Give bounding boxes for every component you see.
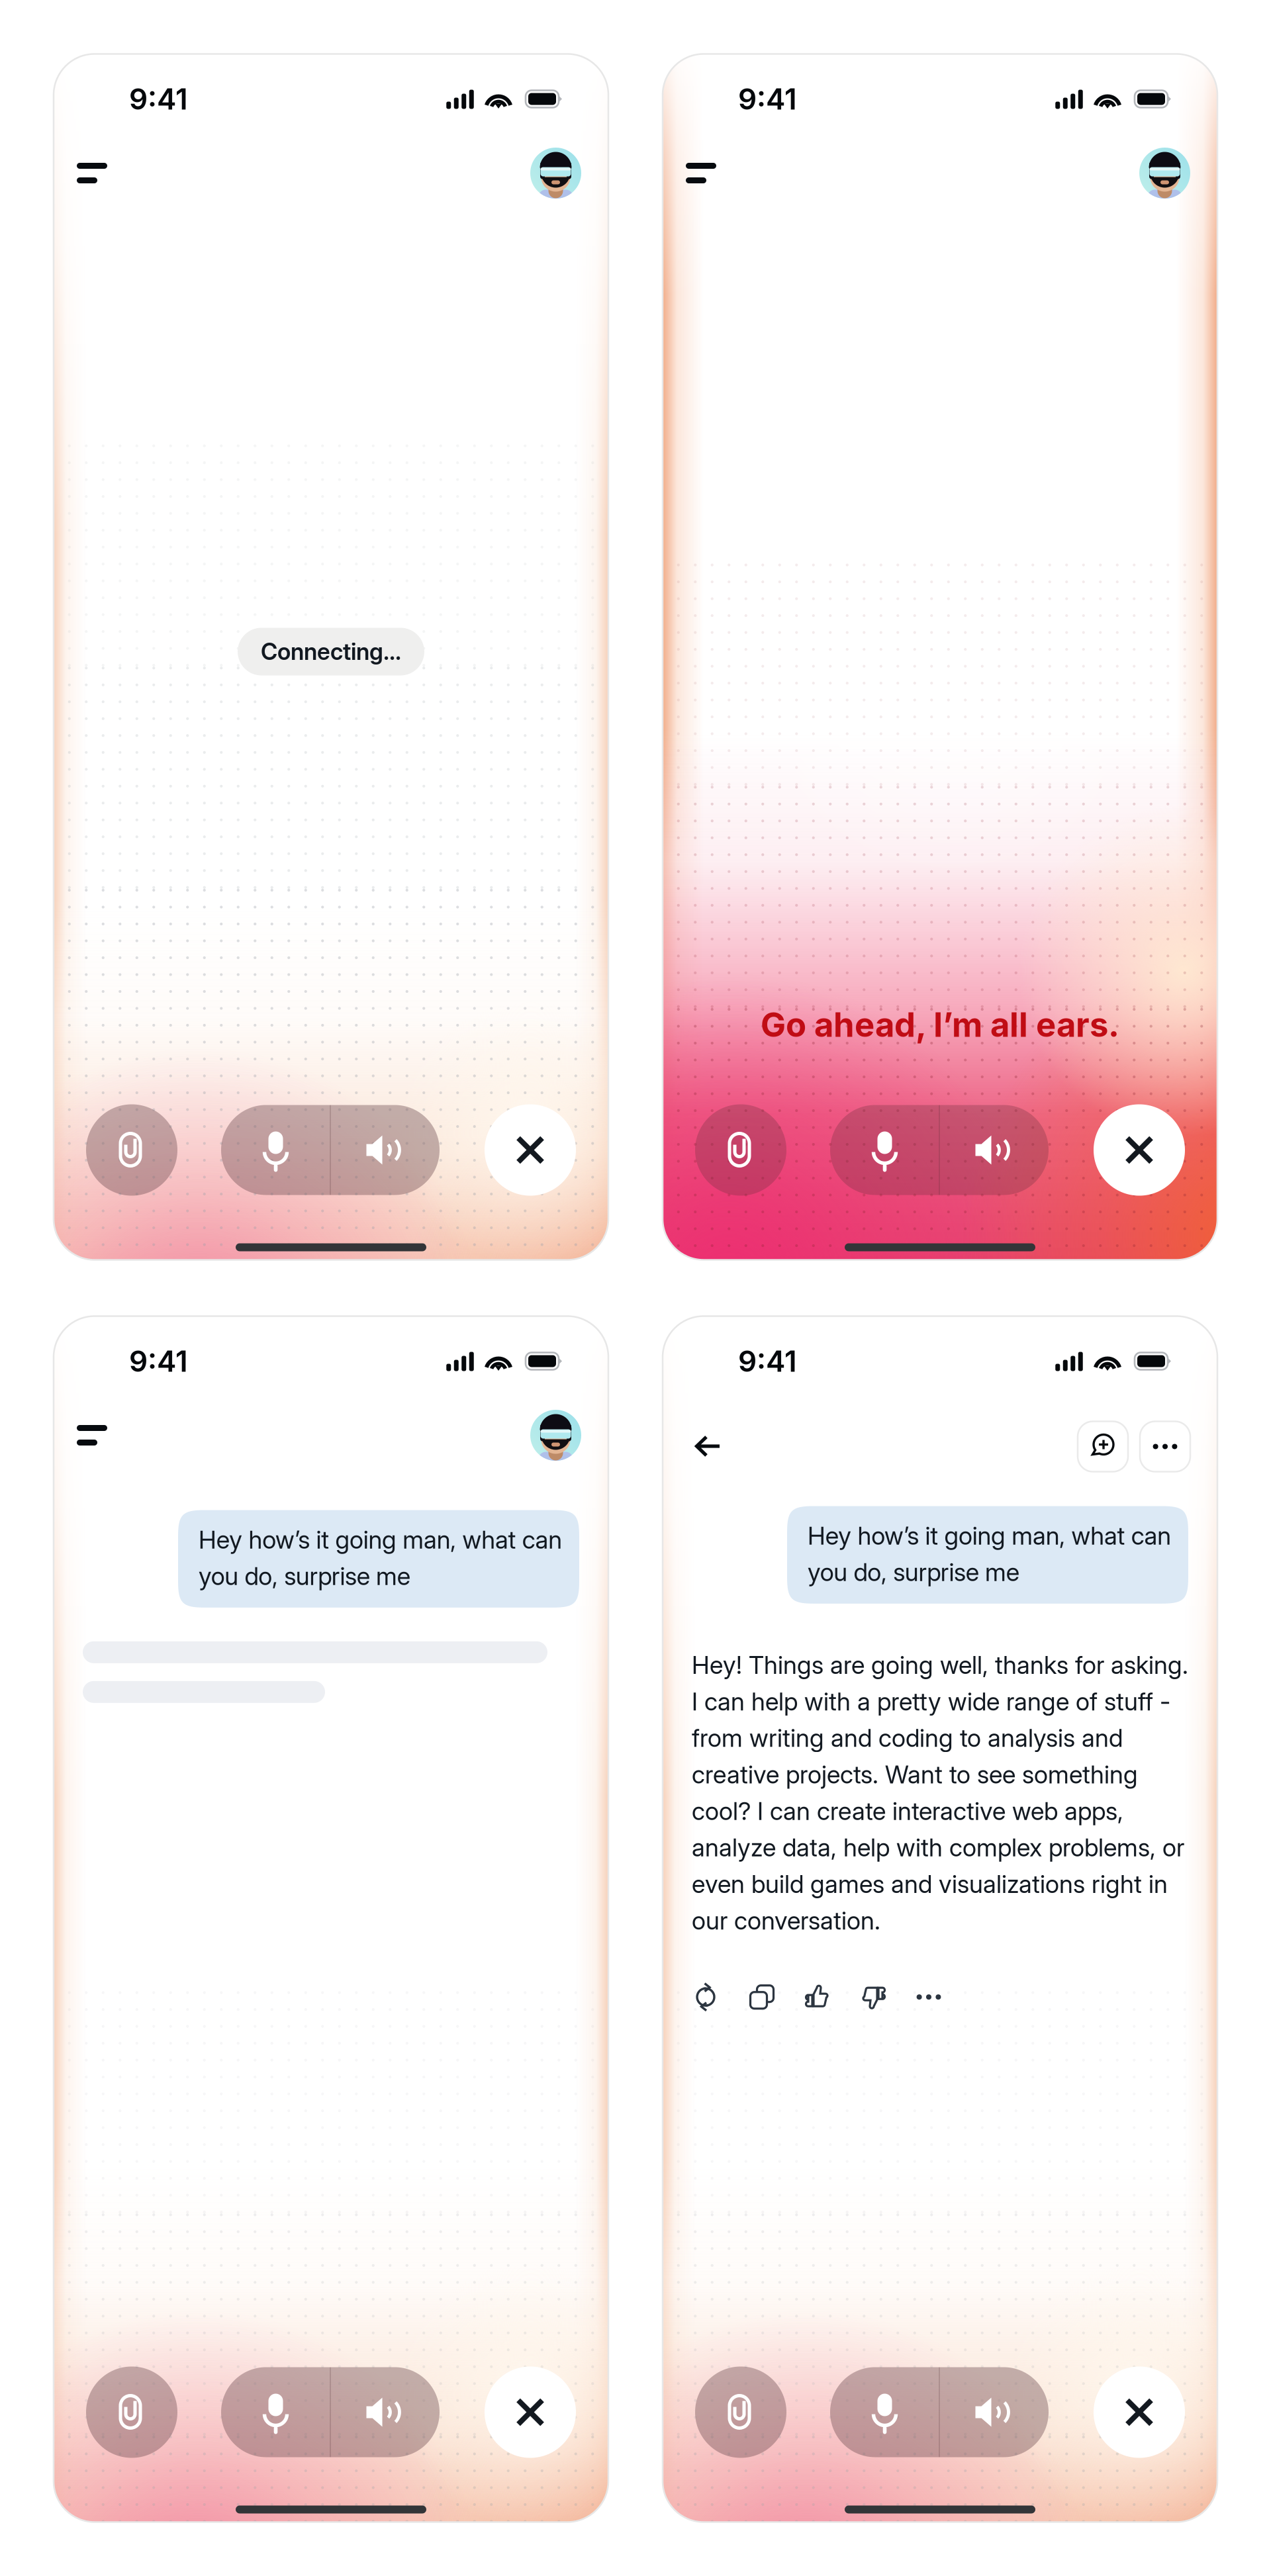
button[interactable]: Profile [1139,148,1190,199]
button[interactable]: End conversation [1094,1104,1185,1196]
button[interactable]: Retry [692,1983,720,2011]
button[interactable]: Attach file [86,2367,177,2458]
button[interactable]: Back [690,1421,740,1472]
staticText: 9:41 [129,1344,188,1379]
button[interactable]: End conversation [485,1104,576,1196]
button[interactable]: Bad response [859,1983,887,2011]
staticText: Hey how’s it going man, what can you do,… [808,1521,1171,1587]
button[interactable]: Microphone [221,1105,330,1195]
button[interactable]: Copy [748,1983,776,2011]
button[interactable]: End conversation [485,2367,576,2458]
button[interactable]: Menu [81,1410,131,1460]
button[interactable]: Menu [81,148,131,198]
button[interactable]: Connecting... [238,628,424,675]
button[interactable]: Speaker [330,2367,440,2457]
button[interactable]: Attach file [86,1104,177,1196]
button[interactable]: Microphone [830,1105,939,1195]
button[interactable]: Attach file [695,2367,786,2458]
staticText: Go ahead, I’m all ears. [761,1004,1119,1045]
button[interactable]: Speaker [330,1105,440,1195]
button[interactable]: New chat [1078,1421,1128,1472]
staticText: 9:41 [738,81,797,117]
button[interactable]: Attach file [695,1104,786,1196]
button[interactable]: More options [1140,1421,1190,1472]
button[interactable]: Speaker [939,2367,1049,2457]
button[interactable]: Microphone [830,2367,939,2457]
button[interactable]: Good response [804,1983,831,2011]
button[interactable]: Menu [690,148,740,198]
staticText: 9:41 [129,81,188,117]
button[interactable]: Microphone [221,2367,330,2457]
button[interactable]: End conversation [1094,2367,1185,2458]
button[interactable]: Speaker [939,1105,1049,1195]
staticText: Hey how’s it going man, what can you do,… [199,1525,562,1591]
button[interactable]: Profile [530,148,581,199]
button[interactable]: More options [915,1983,943,2011]
staticText: 9:41 [738,1344,797,1379]
button[interactable]: Profile [530,1410,581,1461]
staticText: Hey! Things are going well, thanks for a… [692,1650,1188,1935]
staticText: Connecting... [261,638,401,665]
